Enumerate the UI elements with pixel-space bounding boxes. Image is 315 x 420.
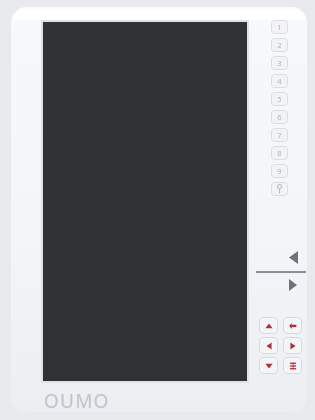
staticText: 7 [277, 130, 282, 140]
button[interactable]: Right [283, 337, 302, 354]
button[interactable]: 3 [271, 56, 288, 70]
button[interactable]: 8 [271, 146, 288, 160]
staticText: 2 [277, 40, 282, 50]
button[interactable]: 4 [271, 74, 288, 88]
button[interactable]: Back [283, 317, 302, 334]
staticText: 4 [277, 76, 282, 86]
staticText: 9 [277, 166, 282, 176]
button[interactable]: Up [259, 317, 278, 334]
staticText: 1 [277, 22, 282, 32]
button[interactable]: 7 [271, 128, 288, 142]
button[interactable]: Next page [281, 274, 305, 296]
button[interactable]: 9 [271, 164, 288, 178]
button[interactable]: 1 [271, 20, 288, 34]
staticText: 5 [277, 94, 282, 104]
staticText: 3 [277, 58, 282, 68]
button[interactable]: Down [259, 357, 278, 374]
staticText: QUMO [44, 388, 110, 408]
button[interactable]: Menu [283, 357, 302, 374]
staticText: 6 [277, 112, 282, 122]
button[interactable]: 6 [271, 110, 288, 124]
button[interactable]: 5 [271, 92, 288, 106]
button[interactable]: Lock [271, 182, 288, 196]
staticText: 8 [277, 148, 282, 158]
button[interactable]: Left [259, 337, 278, 354]
button[interactable]: Previous page [281, 246, 305, 268]
button[interactable]: 2 [271, 38, 288, 52]
